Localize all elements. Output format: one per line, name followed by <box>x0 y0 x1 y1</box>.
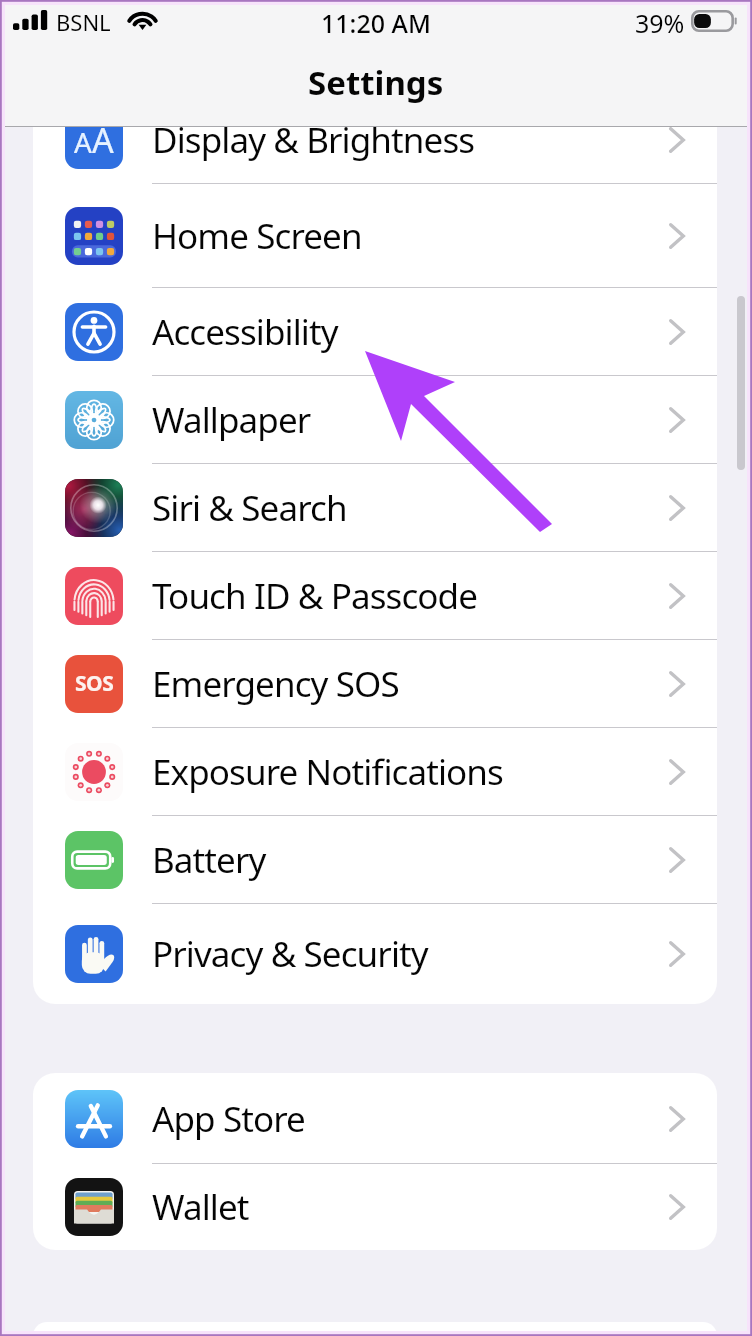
staticText: Siri & Search <box>152 484 669 532</box>
button[interactable]: Home Screen <box>33 184 717 288</box>
staticText: App Store <box>152 1095 669 1143</box>
staticText: Exposure Notifications <box>152 748 669 796</box>
button[interactable]: Privacy & Security <box>33 904 717 1004</box>
staticText: Wallet <box>152 1183 669 1231</box>
button[interactable]: Exposure Notifications <box>33 728 717 816</box>
button[interactable]: Touch ID & Passcode <box>33 552 717 640</box>
staticText: 39% <box>635 6 685 40</box>
button[interactable]: Accessibility <box>33 288 717 376</box>
staticText: 11:20 AM <box>321 6 431 40</box>
other: Battery 39 percent <box>691 10 739 32</box>
staticText: Home Screen <box>152 212 669 260</box>
staticText: Battery <box>152 836 669 884</box>
staticText: Wallpaper <box>152 396 669 444</box>
staticText: A <box>74 127 92 161</box>
button[interactable]: SOS <box>33 640 717 728</box>
button[interactable]: A <box>33 127 717 184</box>
button[interactable]: App Store <box>33 1073 717 1164</box>
staticText: A <box>92 127 114 163</box>
button[interactable]: Wallet <box>33 1164 717 1250</box>
staticText: BSNL <box>56 7 111 37</box>
staticText: Emergency SOS <box>152 660 669 708</box>
other: Wi-Fi <box>127 9 158 31</box>
button[interactable]: Siri & Search <box>33 464 717 552</box>
other: Cellular signal <box>13 10 49 30</box>
button[interactable]: Wallpaper <box>33 376 717 464</box>
staticText: Display & Brightness <box>152 127 669 164</box>
staticText: Accessibility <box>152 308 669 356</box>
staticText: Touch ID & Passcode <box>152 572 669 620</box>
staticText: Privacy & Security <box>152 930 669 978</box>
button[interactable]: Battery <box>33 816 717 904</box>
staticText: Settings <box>308 60 444 105</box>
staticText: SOS <box>75 669 114 698</box>
